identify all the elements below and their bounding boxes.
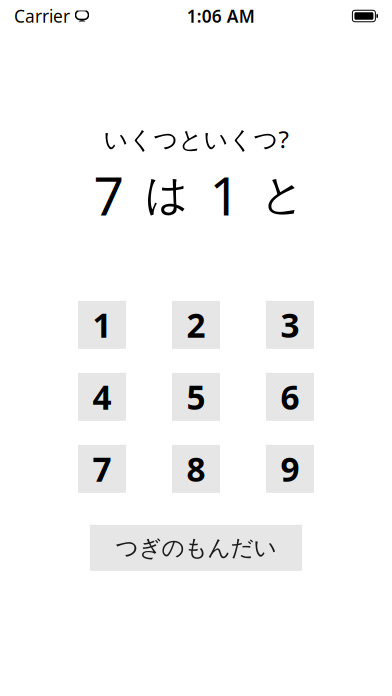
button[interactable]: 1: [78, 301, 126, 349]
button[interactable]: つぎのもんだい: [90, 525, 302, 571]
staticText: 1:06 AM: [187, 4, 255, 27]
staticText: 9: [280, 447, 299, 491]
button[interactable]: 7: [78, 445, 126, 493]
staticText: つぎのもんだい: [115, 534, 276, 562]
button[interactable]: 8: [172, 445, 220, 493]
button[interactable]: 4: [78, 373, 126, 421]
staticText: 1: [92, 303, 111, 347]
staticText: 1: [209, 159, 240, 230]
staticText: 4: [92, 375, 111, 419]
staticText: と: [261, 169, 305, 221]
button[interactable]: 2: [172, 301, 220, 349]
staticText: 2: [186, 303, 205, 347]
staticText: 3: [280, 303, 299, 347]
button[interactable]: 3: [266, 301, 314, 349]
button[interactable]: 9: [266, 445, 314, 493]
staticText: は: [145, 169, 189, 221]
staticText: いくつといくつ?: [103, 123, 288, 155]
staticText: 8: [186, 447, 205, 491]
button[interactable]: 6: [266, 373, 314, 421]
button[interactable]: 5: [172, 373, 220, 421]
staticText: 5: [186, 375, 205, 419]
staticText: Carrier: [14, 4, 70, 27]
staticText: 7: [93, 159, 124, 230]
staticText: 6: [280, 375, 299, 419]
staticText: 7: [92, 447, 111, 491]
